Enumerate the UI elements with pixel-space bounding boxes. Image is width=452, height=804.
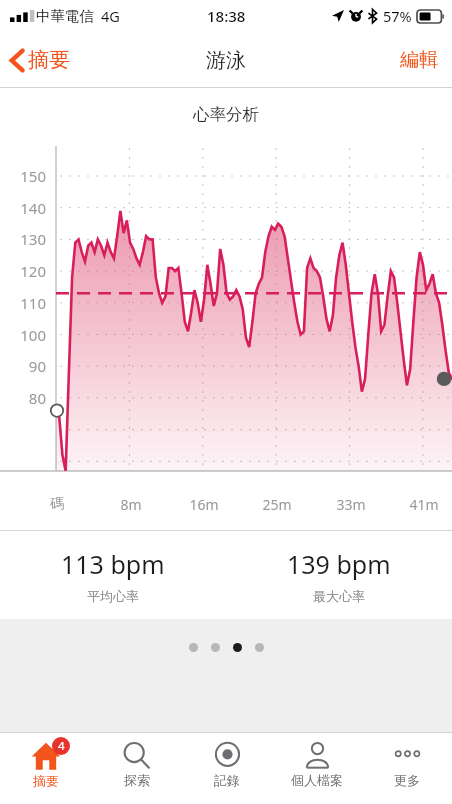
button[interactable]: 個人檔案 xyxy=(272,733,362,804)
button[interactable] xyxy=(233,643,242,652)
staticText: 113 bpm xyxy=(61,547,165,581)
button[interactable]: 更多 xyxy=(362,733,452,804)
staticText: 碼 xyxy=(29,495,85,513)
button[interactable]: 探索 xyxy=(91,733,182,804)
staticText: 摘要 xyxy=(28,47,70,73)
staticText: 57% xyxy=(383,6,412,26)
staticText: 心率分析 xyxy=(0,104,452,125)
staticText: 16m xyxy=(176,495,232,514)
staticText: 最大心率 xyxy=(313,588,365,604)
staticText: 25m xyxy=(249,495,305,514)
staticText: 150 xyxy=(4,166,46,186)
staticText: 更多 xyxy=(394,772,420,788)
button[interactable] xyxy=(211,643,220,652)
staticText: 平均心率 xyxy=(87,588,139,604)
button[interactable]: 摘要 xyxy=(0,39,82,81)
staticText: 18:38 xyxy=(207,6,246,26)
staticText: 41m xyxy=(396,495,452,514)
staticText: 中華電信 xyxy=(36,7,94,25)
button[interactable]: 摘要 xyxy=(0,733,91,804)
staticText: 游泳 xyxy=(206,48,246,73)
staticText: 4 xyxy=(58,738,65,754)
staticText: 記錄 xyxy=(214,772,240,788)
button[interactable]: 編輯 xyxy=(386,40,452,80)
staticText: 摘要 xyxy=(33,773,59,789)
staticText: 探索 xyxy=(124,772,150,788)
staticText: 33m xyxy=(323,495,379,514)
staticText: 個人檔案 xyxy=(291,772,343,788)
staticText: 110 xyxy=(4,293,46,313)
staticText: 8m xyxy=(103,495,159,514)
staticText: 編輯 xyxy=(400,48,438,72)
button[interactable] xyxy=(189,643,198,652)
button[interactable] xyxy=(255,643,264,652)
staticText: 4G xyxy=(101,6,120,26)
staticText: 139 bpm xyxy=(287,547,391,581)
staticText: 90 xyxy=(4,356,46,376)
staticText: 130 xyxy=(4,229,46,249)
button[interactable]: 記錄 xyxy=(182,733,272,804)
staticText: 140 xyxy=(4,198,46,218)
staticText: 100 xyxy=(4,325,46,345)
staticText: 80 xyxy=(4,388,46,408)
staticText: 120 xyxy=(4,261,46,281)
